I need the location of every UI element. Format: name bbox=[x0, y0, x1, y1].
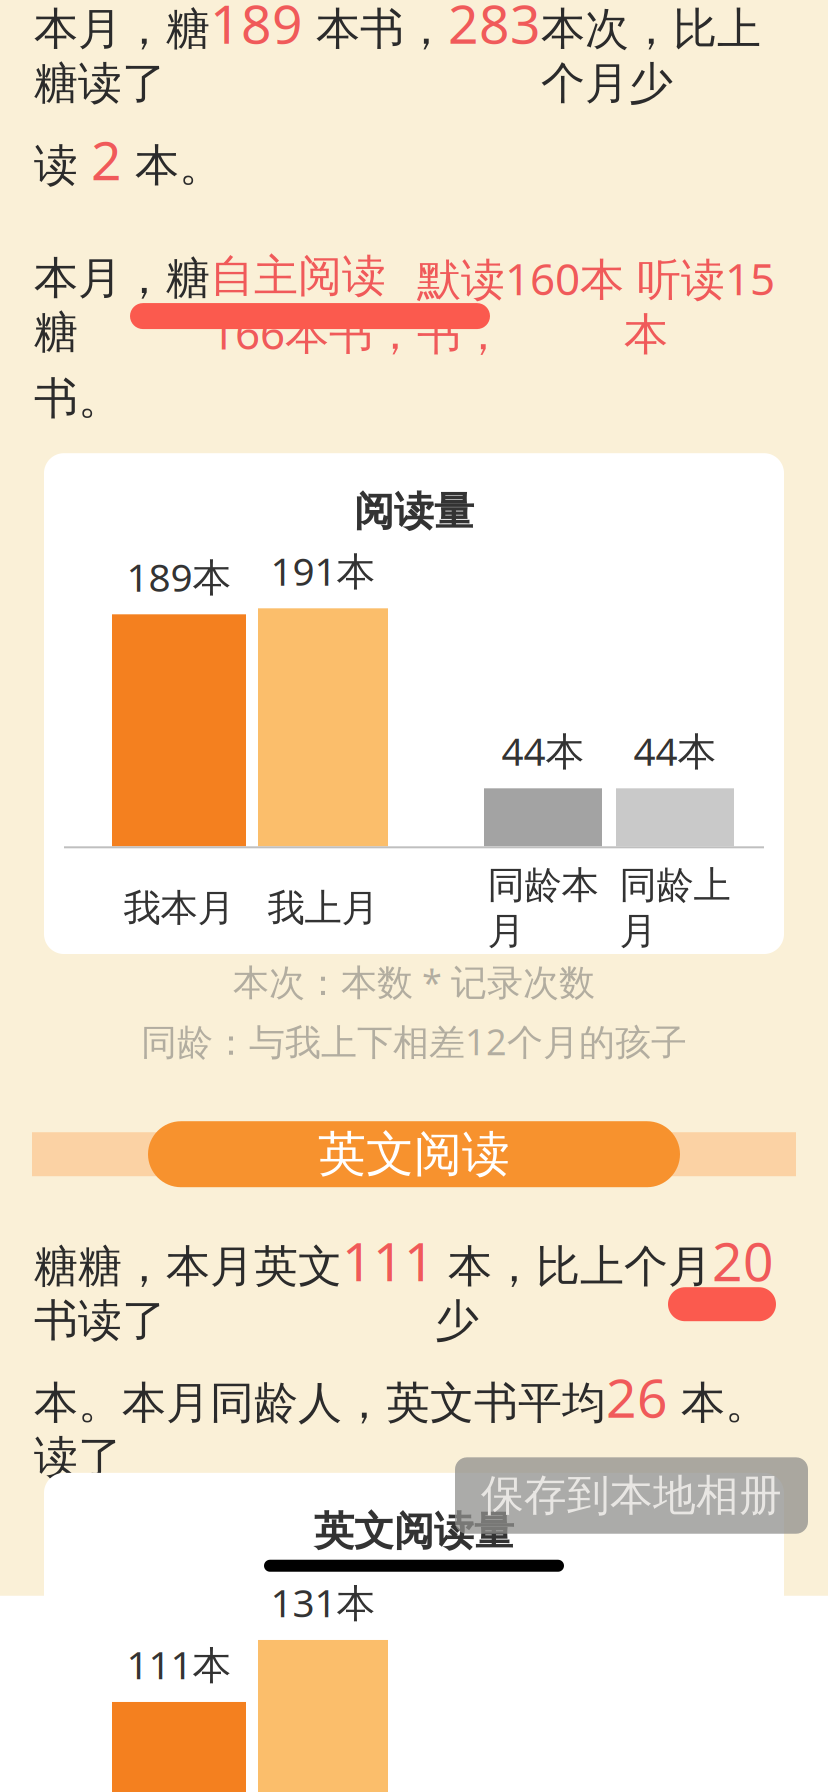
staticText: 自主阅读166本书， bbox=[210, 249, 417, 362]
staticText: 44本 bbox=[633, 725, 716, 776]
staticText: 191本 bbox=[270, 545, 375, 596]
staticText: 本次：本数 * 记录次数 bbox=[233, 958, 595, 1005]
staticText: 同龄本月 bbox=[487, 862, 598, 954]
staticText: 111 bbox=[342, 1225, 435, 1296]
staticText: 283 bbox=[448, 0, 541, 58]
staticText: 默读160本书， bbox=[417, 249, 624, 362]
staticText: 英文阅读量 bbox=[314, 1507, 514, 1556]
staticText: 本。 bbox=[668, 1376, 769, 1430]
staticText: 本月，糖糖 bbox=[34, 251, 210, 359]
staticText: 英文阅读 bbox=[318, 1125, 510, 1184]
staticText: 111本 bbox=[126, 1639, 231, 1690]
staticText: 本月，糖糖读了 bbox=[34, 2, 210, 110]
staticText: 189本 bbox=[126, 551, 231, 602]
staticText: 读 bbox=[34, 139, 91, 193]
staticText: 131本 bbox=[270, 1577, 375, 1628]
staticText: 189 bbox=[210, 0, 303, 58]
staticText: 书。 bbox=[34, 372, 122, 426]
staticText: 20 bbox=[712, 1225, 774, 1296]
staticText: 我本月 bbox=[123, 885, 234, 931]
staticText: 本。本月同龄人，英文书平均读了 bbox=[34, 1376, 606, 1484]
button[interactable]: 保存到本地相册 bbox=[455, 1457, 808, 1534]
staticText: 本，比上个月少 bbox=[435, 1240, 712, 1348]
staticText: 阅读量 bbox=[354, 487, 474, 536]
staticText: 同龄上月 bbox=[619, 862, 730, 954]
staticText: 本次，比上个月少 bbox=[541, 2, 761, 110]
button[interactable]: 英文阅读 bbox=[148, 1121, 680, 1187]
staticText: 糖糖，本月英文书读了 bbox=[34, 1240, 342, 1348]
staticText: 本。 bbox=[122, 139, 223, 193]
staticText: 同龄：与我上下相差12个月的孩子 bbox=[141, 1017, 687, 1065]
staticText: 2 bbox=[91, 124, 122, 195]
staticText: 本书， bbox=[303, 2, 448, 56]
staticText: 我上月 bbox=[267, 885, 378, 931]
staticText: 44本 bbox=[501, 725, 584, 776]
staticText: 保存到本地相册 bbox=[481, 1469, 782, 1522]
staticText: 26 bbox=[606, 1362, 668, 1432]
staticText: 听读15本 bbox=[624, 249, 775, 362]
